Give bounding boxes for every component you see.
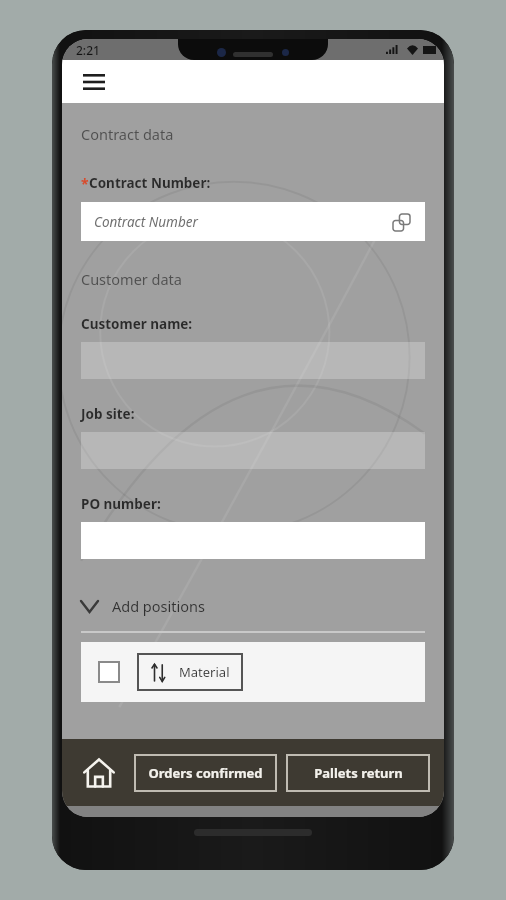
staticText: Job site: — [81, 405, 135, 423]
staticText: 2:21 — [76, 42, 100, 58]
button[interactable]: Pallets return — [286, 754, 430, 792]
button[interactable]: Orders confirmed — [134, 754, 277, 792]
staticText: Pallets return — [314, 764, 403, 782]
button[interactable]: Open navigation menu — [76, 64, 112, 100]
staticText: Customer name: — [81, 315, 193, 333]
staticText: Contract Number — [94, 213, 198, 231]
staticText: * — [81, 174, 89, 193]
staticText: Contract Number: — [89, 174, 211, 192]
button[interactable]: Material — [137, 653, 243, 691]
staticText: Material — [179, 663, 230, 681]
button[interactable]: Scan or copy contract number — [387, 208, 415, 236]
staticText: Contract data — [81, 124, 174, 144]
staticText: PO number: — [81, 495, 161, 513]
staticText: Customer data — [81, 269, 182, 289]
button[interactable]: Add positions — [81, 591, 425, 621]
button[interactable]: Select position — [98, 661, 120, 683]
button[interactable]: Home — [76, 750, 122, 796]
staticText: Orders confirmed — [148, 764, 263, 782]
staticText: Add positions — [112, 596, 205, 616]
button[interactable]: Contract Number — [81, 202, 425, 241]
